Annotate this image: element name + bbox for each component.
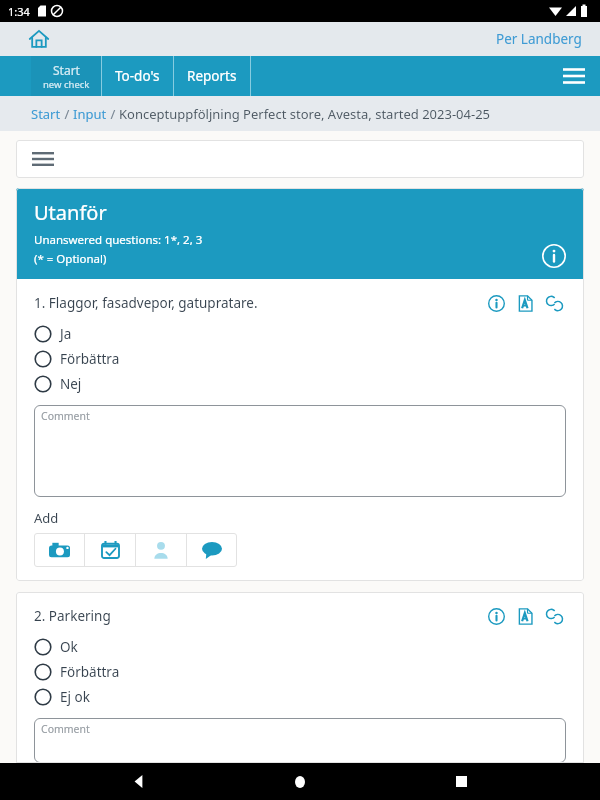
button[interactable]: Start — [31, 56, 101, 96]
button[interactable]: Question info — [484, 604, 508, 628]
staticText: / — [107, 105, 119, 123]
staticText: Ej ok — [60, 688, 90, 706]
staticText: Unanswered questions: 1*, 2, 3 — [34, 232, 203, 248]
staticText: Add — [34, 509, 59, 527]
staticText: 1:34 — [8, 4, 30, 19]
staticText: new check — [43, 78, 90, 91]
button[interactable]: Recent apps — [439, 763, 483, 800]
staticText: Ja — [60, 325, 72, 343]
staticText: Konceptuppföljning Perfect store, Avesta… — [119, 105, 491, 123]
button[interactable]: Add comment — [187, 533, 237, 567]
staticText: 1. Flaggor, fasadvepor, gatupratare. — [34, 294, 484, 312]
staticText: / — [61, 105, 73, 123]
button[interactable]: Add photo — [34, 533, 84, 567]
button[interactable]: Comment — [34, 718, 566, 763]
staticText: Start — [53, 62, 80, 78]
button[interactable]: Back — [117, 763, 161, 800]
staticText: 2. Parkering — [34, 607, 484, 625]
button[interactable]: Home — [22, 22, 56, 56]
staticText: Comment — [41, 409, 90, 423]
button[interactable]: Question info — [484, 291, 508, 315]
button[interactable]: Assign person — [136, 533, 186, 567]
staticText: Förbättra — [60, 350, 120, 368]
staticText: (* = Optional) — [34, 251, 107, 267]
staticText: Comment — [41, 722, 90, 736]
button[interactable]: Ej ok — [34, 684, 566, 709]
button[interactable]: Copy link — [542, 291, 566, 315]
button[interactable]: Reports — [174, 56, 250, 96]
button[interactable]: Comment — [34, 405, 566, 497]
button[interactable]: To-do's — [102, 56, 173, 96]
button[interactable]: Open PDF — [513, 604, 537, 628]
button[interactable]: Add to-do — [85, 533, 135, 567]
button[interactable]: Nej — [34, 371, 566, 396]
staticText: Förbättra — [60, 663, 120, 681]
staticText: Utanför — [34, 199, 107, 226]
staticText: Nej — [60, 375, 82, 393]
button[interactable]: Copy link — [542, 604, 566, 628]
button[interactable]: Ja — [34, 321, 566, 346]
staticText: Per Landberg — [496, 30, 582, 48]
button[interactable]: Menu — [548, 56, 600, 96]
staticText: Ok — [60, 638, 78, 656]
button[interactable]: Home — [278, 763, 322, 800]
staticText: To-do's — [115, 67, 160, 85]
button[interactable]: Open PDF — [513, 291, 537, 315]
staticText: Input — [73, 105, 107, 123]
button[interactable]: Input — [73, 105, 107, 123]
staticText: Reports — [187, 67, 237, 85]
button[interactable]: Section info — [540, 242, 568, 270]
button[interactable]: Förbättra — [34, 346, 566, 371]
button[interactable]: Ok — [34, 634, 566, 659]
staticText: Start — [31, 105, 61, 123]
button[interactable]: Per Landberg — [486, 26, 592, 52]
button[interactable]: Section menu — [16, 140, 584, 178]
button[interactable]: Start — [31, 105, 61, 123]
button[interactable]: Förbättra — [34, 659, 566, 684]
